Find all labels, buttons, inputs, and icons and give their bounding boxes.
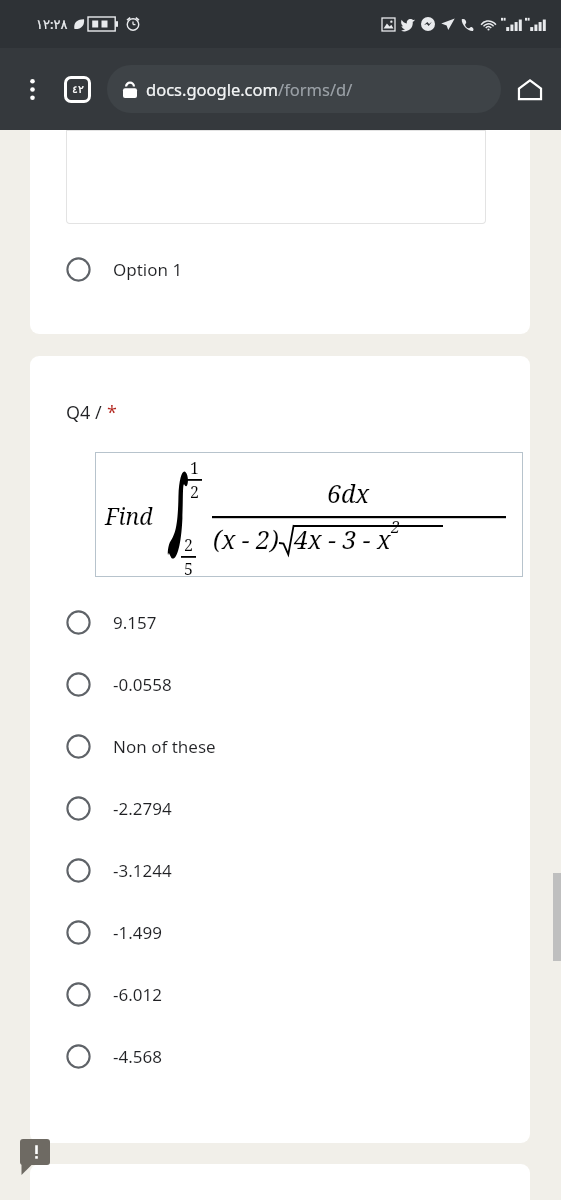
staticText: -0.0558 [113, 673, 172, 696]
staticText: /forms/d/ [278, 78, 353, 100]
staticText: -4.568 [113, 1045, 162, 1068]
staticText: 6dx [327, 476, 370, 510]
staticText: Non of these [113, 735, 216, 758]
staticText: * [107, 400, 117, 425]
staticText: 2 [190, 481, 199, 503]
staticText: 4x − 3 − x [294, 522, 391, 556]
button[interactable]: Warning [20, 1139, 50, 1175]
button[interactable]: More options [12, 69, 52, 109]
staticText: 5 [184, 558, 193, 580]
button[interactable]: Non of these [30, 715, 530, 777]
button[interactable]: -1.499 [30, 901, 530, 963]
button[interactable]: -0.0558 [30, 653, 530, 715]
button[interactable]: 9.157 [30, 591, 530, 653]
button[interactable] [30, 1164, 530, 1200]
button[interactable]: Option 1 [30, 242, 530, 296]
staticText: -2.2794 [113, 797, 172, 820]
staticText: docs.google.com [146, 78, 278, 100]
button[interactable]: -6.012 [30, 963, 530, 1025]
staticText: 1 [190, 457, 199, 479]
button[interactable]: -3.1244 [30, 839, 530, 901]
staticText: Find [105, 500, 153, 531]
button[interactable]: Home [507, 66, 553, 112]
button[interactable]: docs.google.com [107, 65, 501, 113]
staticText: Option 1 [113, 258, 183, 281]
staticText: 2 [184, 534, 193, 556]
button[interactable]: -2.2794 [30, 777, 530, 839]
staticText: Q4 / [66, 400, 107, 425]
staticText: -6.012 [113, 983, 162, 1006]
staticText: 2 [391, 516, 400, 538]
staticText: -3.1244 [113, 859, 172, 882]
staticText: 9.157 [113, 611, 157, 634]
staticText: ١٢:٢٨ [36, 15, 68, 33]
button[interactable]: Q4 / [30, 356, 530, 1143]
button[interactable]: -4.568 [30, 1025, 530, 1087]
staticText: -1.499 [113, 921, 162, 944]
staticText: ٤٢ [72, 83, 84, 96]
staticText: (x − 2) [213, 522, 279, 556]
button[interactable]: Option 1 [30, 130, 530, 334]
button[interactable]: Tabs [62, 74, 92, 104]
